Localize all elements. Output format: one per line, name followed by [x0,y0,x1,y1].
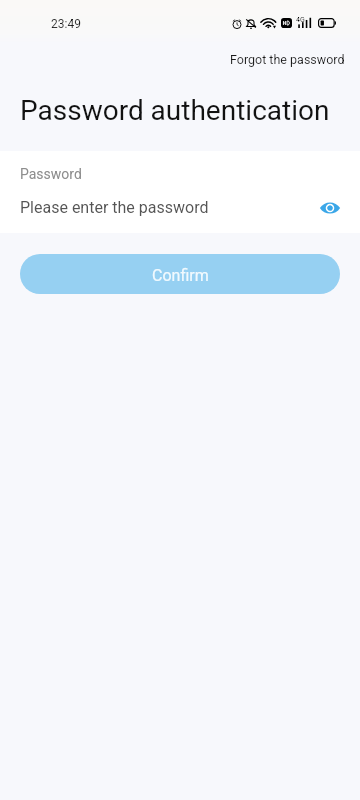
button[interactable]: Confirm [20,254,340,294]
staticText: Password authentication [20,94,330,127]
button[interactable]: Show password [317,195,343,221]
staticText: 23:49 [51,17,81,31]
staticText: Password [20,166,82,182]
button[interactable]: Forgot the password [222,47,353,72]
staticText: Please enter the password [20,198,317,217]
staticText: 4G [296,16,305,24]
staticText: Confirm [152,266,209,285]
staticText: Forgot the password [230,52,345,67]
